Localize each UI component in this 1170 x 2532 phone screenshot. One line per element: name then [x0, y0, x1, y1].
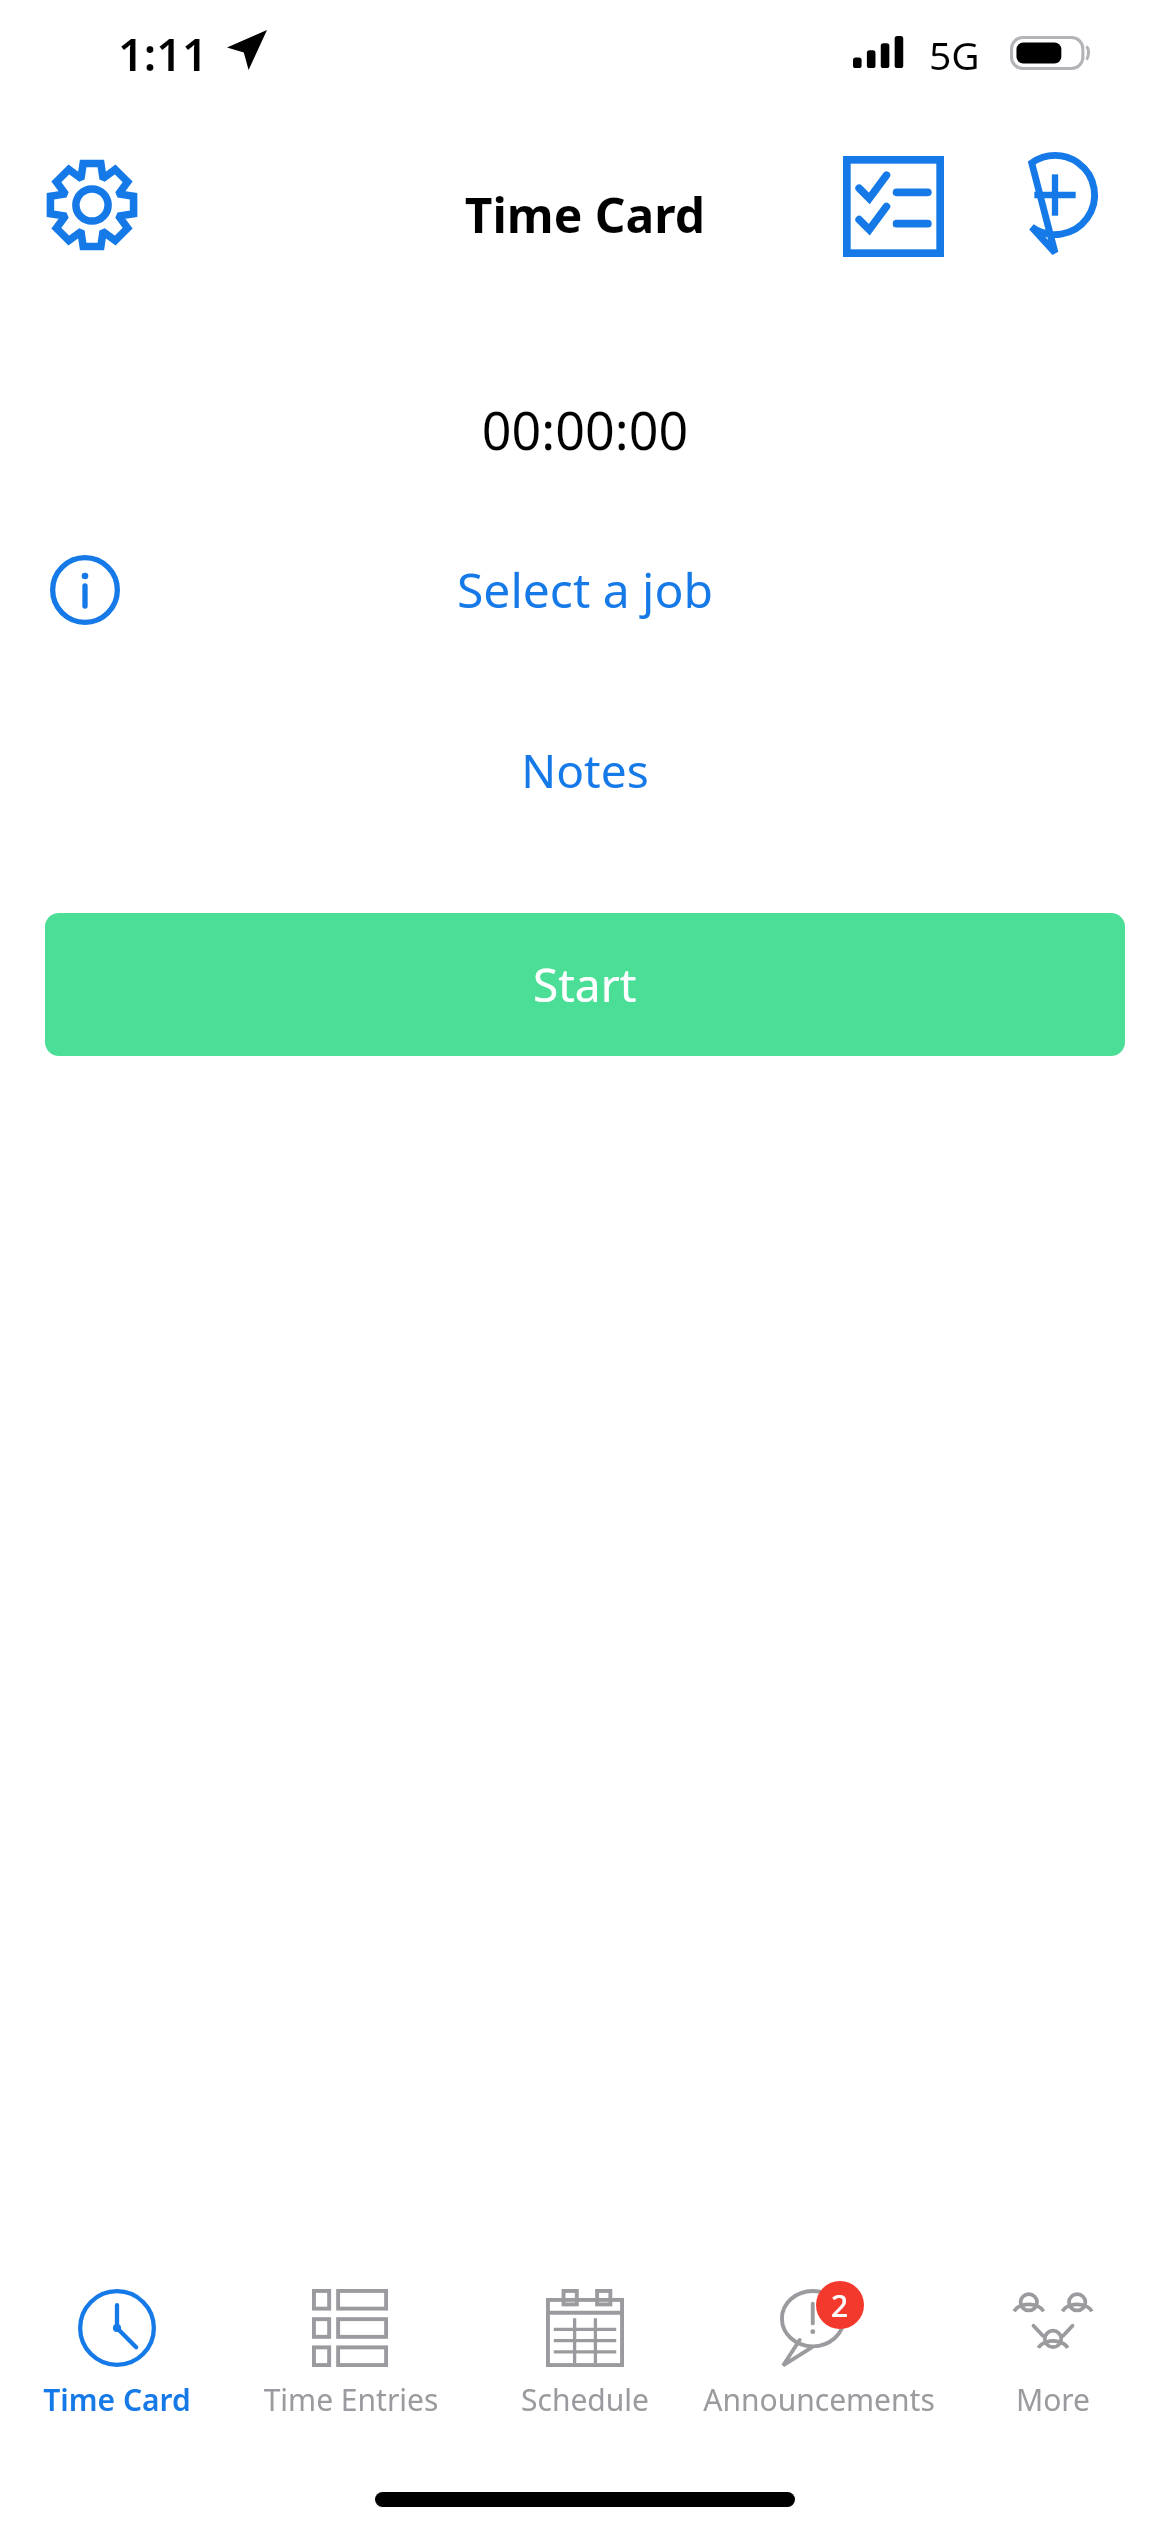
staticText: Time Card	[0, 182, 1170, 247]
button[interactable]: Checklist	[826, 139, 960, 273]
button[interactable]: 2	[702, 2283, 936, 2453]
button[interactable]: More	[936, 2283, 1170, 2453]
button[interactable]: Add location	[988, 137, 1122, 271]
staticText: Select a job	[0, 557, 1170, 622]
button[interactable]: Info	[39, 544, 131, 636]
staticText: Announcements	[702, 2379, 936, 2420]
button[interactable]: Notes	[0, 731, 1170, 809]
button[interactable]: Schedule	[468, 2283, 702, 2453]
staticText: Start	[533, 953, 637, 1016]
staticText: Notes	[0, 739, 1170, 802]
staticText: 1:11	[118, 23, 208, 84]
staticText: 00:00:00	[0, 394, 1170, 465]
button[interactable]: Time Entries	[234, 2283, 468, 2453]
staticText: Time Entries	[234, 2379, 468, 2420]
staticText: Schedule	[468, 2379, 702, 2420]
button[interactable]: Select a job	[0, 546, 1170, 632]
staticText: 2	[831, 2285, 849, 2326]
button[interactable]: Start	[45, 913, 1125, 1056]
button[interactable]: Time Card	[0, 2283, 234, 2453]
staticText: Time Card	[0, 2379, 234, 2420]
staticText: 5G	[929, 28, 980, 81]
staticText: More	[936, 2379, 1170, 2420]
button[interactable]: Settings	[36, 149, 148, 261]
